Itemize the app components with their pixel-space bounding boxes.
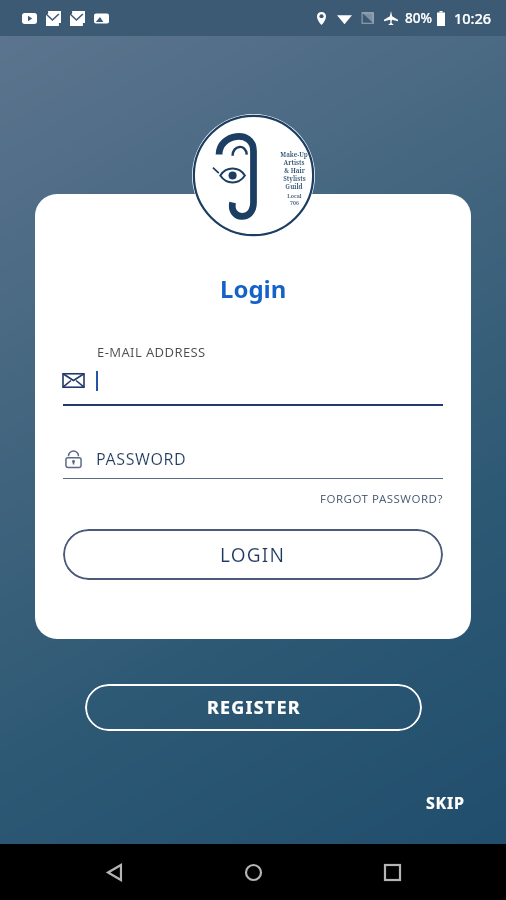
staticText: Login <box>220 272 287 305</box>
staticText: SKIP <box>426 792 465 814</box>
button[interactable]: REGISTER <box>85 684 422 731</box>
staticText: Local <box>287 192 302 199</box>
staticText: & Hair <box>284 166 305 174</box>
staticText: 10:26 <box>454 8 492 28</box>
button[interactable] <box>63 370 443 391</box>
button[interactable]: PASSWORD <box>63 448 443 470</box>
button[interactable]: FORGOT PASSWORD? <box>320 491 443 507</box>
button[interactable]: LOGIN <box>63 529 443 580</box>
staticText: REGISTER <box>207 695 301 720</box>
staticText: Make-Up <box>280 150 308 158</box>
staticText: Artists <box>283 158 305 166</box>
staticText: 706 <box>290 199 299 206</box>
button[interactable]: Recent apps <box>374 854 410 890</box>
button[interactable]: Back <box>96 854 132 890</box>
button[interactable]: Home <box>235 854 271 890</box>
button[interactable]: SKIP <box>420 788 471 818</box>
staticText: E-MAIL ADDRESS <box>97 343 206 361</box>
staticText: PASSWORD <box>96 448 187 470</box>
staticText: Guild <box>285 182 303 190</box>
staticText: LOGIN <box>220 542 286 568</box>
staticText: 80% <box>405 9 432 27</box>
staticText: Stylists <box>283 174 306 182</box>
